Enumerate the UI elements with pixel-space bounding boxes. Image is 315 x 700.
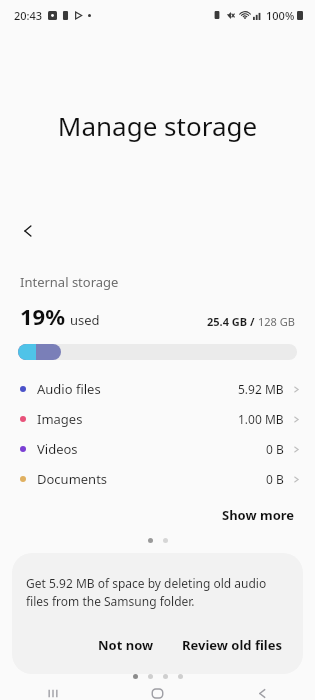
- button[interactable]: Get 5.92 MB of space by deleting old aud…: [12, 553, 303, 674]
- button[interactable]: Images: [0, 404, 315, 434]
- button[interactable]: Back: [210, 687, 315, 700]
- staticText: 20:43: [14, 8, 43, 23]
- staticText: Manage storage: [0, 108, 315, 143]
- button[interactable]: Recents: [0, 687, 105, 700]
- staticText: 128 GB: [258, 314, 295, 329]
- staticText: 5.92 MB: [238, 381, 284, 397]
- staticText: used: [70, 311, 100, 329]
- button[interactable]: Videos: [0, 434, 315, 464]
- staticText: Videos: [37, 440, 78, 458]
- staticText: 1.00 MB: [238, 411, 284, 427]
- staticText: 19%: [20, 301, 66, 331]
- staticText: Audio files: [37, 380, 101, 398]
- button[interactable]: Show more: [208, 501, 315, 529]
- staticText: 0 B: [266, 441, 284, 457]
- staticText: Show more: [222, 506, 295, 524]
- staticText: Not now: [98, 636, 154, 654]
- button[interactable]: Documents: [0, 464, 315, 494]
- button[interactable]: Back: [8, 211, 48, 251]
- button[interactable]: Audio files: [0, 374, 315, 404]
- staticText: Images: [37, 410, 83, 428]
- staticText: Internal storage: [20, 273, 119, 291]
- staticText: 0 B: [266, 471, 284, 487]
- staticText: 25.4 GB /: [207, 314, 255, 329]
- staticText: Documents: [37, 470, 108, 488]
- button[interactable]: Home: [105, 687, 210, 700]
- button[interactable]: Not now: [92, 630, 160, 660]
- button[interactable]: Review old files: [176, 630, 289, 660]
- staticText: 100%: [266, 8, 295, 23]
- staticText: Get 5.92 MB of space by deleting old aud…: [26, 575, 289, 610]
- staticText: Review old files: [182, 636, 283, 654]
